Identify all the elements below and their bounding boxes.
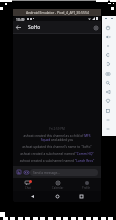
staticText: ashoat created a subchannel named "Lunch… [18,159,96,163]
button[interactable]: Back [28,192,37,201]
staticText: ashoat updated this channel's name to "S… [18,145,96,149]
button[interactable]: Emulator control 2 [106,35,110,39]
button[interactable]: Home [53,192,62,201]
staticText: Fri 2:59 PM [18,127,96,131]
staticText: Chat [25,186,31,190]
button[interactable]: Emulator control 1 [106,26,110,30]
button[interactable]: Profile [72,178,101,191]
staticText: Calendar [52,186,64,190]
button[interactable]: Camera [23,169,29,175]
button[interactable]: Back [13,22,24,33]
button[interactable]: Attach image [16,169,22,175]
button[interactable]: Emulator control 12 [106,127,110,131]
button[interactable]: Emulator control 4 [106,53,110,57]
staticText: Profile [82,186,91,190]
staticText: ashoat created this channel as a child o… [18,134,96,142]
button[interactable]: Recent apps [77,192,86,201]
button[interactable]: Emulator control 9 [106,99,110,103]
button[interactable]: Emulator control 8 [106,90,110,94]
button[interactable]: Emulator control 11 [106,118,110,122]
button[interactable]: Calendar [43,178,72,191]
button[interactable]: Emulator control 10 [106,109,110,113]
staticText: ashoat created a subchannel named "Comm … [18,152,96,156]
staticText: Android Emulator - Pixel_4_API_30:5554 [26,10,89,15]
button[interactable]: Emulator control 3 [106,44,110,48]
staticText: Send a message... [33,171,60,175]
button[interactable]: Emulator control 6 [106,72,110,76]
button[interactable]: Emulator control 5 [106,62,110,66]
button[interactable]: Chat [13,178,43,191]
button[interactable]: Emulator control 7 [106,81,110,85]
button[interactable]: Send a message... [30,169,98,176]
staticText: 10:39 [16,17,25,21]
staticText: SoHo [28,24,41,31]
button[interactable]: Channel settings [90,22,101,33]
